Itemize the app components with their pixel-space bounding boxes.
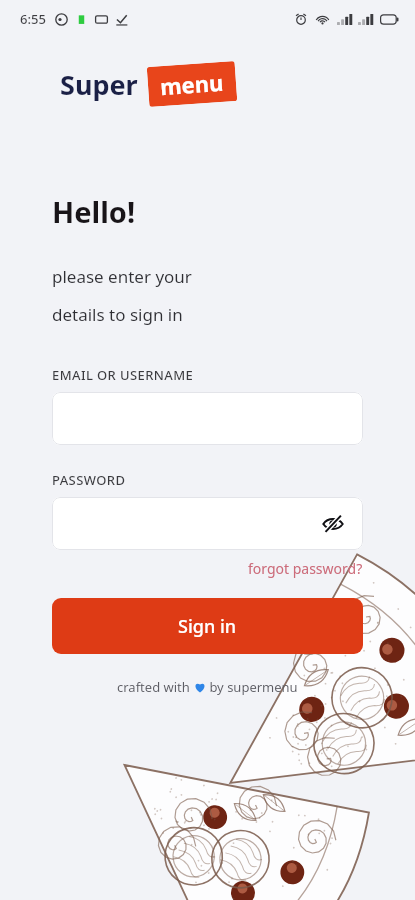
staticText: please enter your [52, 265, 192, 288]
staticText: Hello! [52, 192, 136, 231]
button[interactable]: forgot password? [248, 559, 363, 578]
button[interactable]: Show password [313, 504, 353, 544]
staticText: forgot password? [248, 559, 363, 578]
staticText: PASSWORD [52, 471, 126, 489]
staticText: crafted with [117, 678, 194, 696]
staticText: 6:55 [20, 10, 46, 28]
button[interactable]: Show password [52, 497, 363, 550]
staticText: by supermenu [206, 678, 298, 696]
button[interactable]: Sign in [52, 598, 363, 654]
staticText: EMAIL OR USERNAME [52, 366, 194, 384]
staticText: Sign in [178, 614, 237, 639]
staticText: details to sign in [52, 303, 183, 326]
staticText: menu [159, 67, 225, 101]
button[interactable]: Super [60, 64, 236, 104]
button[interactable]: Email or username field [52, 392, 363, 445]
staticText: Super [60, 66, 138, 103]
